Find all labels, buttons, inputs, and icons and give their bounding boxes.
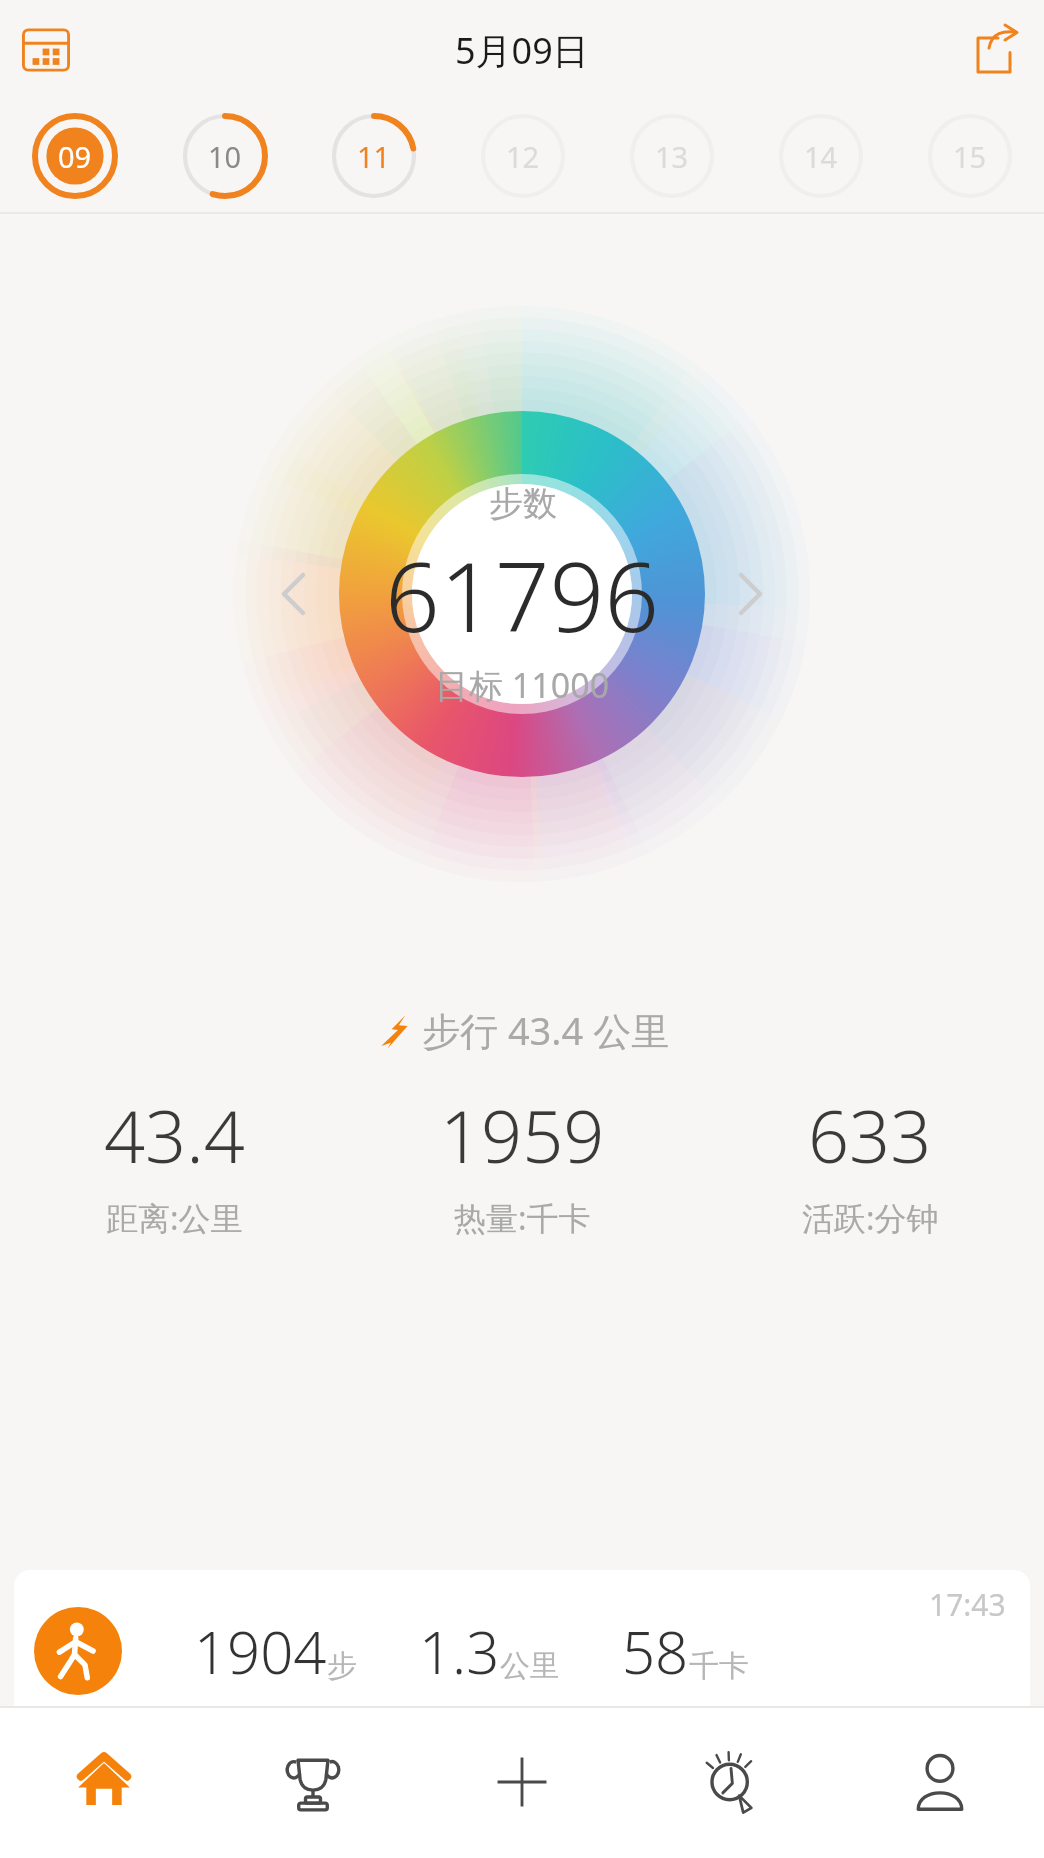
staticText: 距离:公里 — [106, 1196, 243, 1240]
staticText: 61796 — [385, 529, 660, 660]
staticText: 1959 — [440, 1086, 605, 1184]
staticText: 公里 — [500, 1647, 560, 1685]
staticText: 14 — [804, 137, 838, 176]
staticText: 09 — [58, 137, 92, 176]
button[interactable]: Discover — [626, 1706, 835, 1858]
staticText: 千卡 — [689, 1647, 749, 1685]
staticText: 步 — [327, 1647, 357, 1685]
staticText: 1904 — [194, 1612, 327, 1691]
staticText: 17:43 — [929, 1584, 1006, 1625]
button[interactable]: 17:43 — [14, 1570, 1030, 1706]
staticText: 步数 — [489, 482, 557, 525]
button[interactable]: 15 — [895, 100, 1044, 212]
staticText: 11 — [357, 137, 391, 176]
button[interactable]: Profile — [835, 1706, 1044, 1858]
button[interactable]: Home — [0, 1706, 208, 1858]
staticText: 633 — [808, 1086, 932, 1184]
button[interactable]: Share — [958, 14, 1030, 86]
staticText: 10 — [208, 137, 242, 176]
staticText: 1.3 — [419, 1612, 500, 1691]
staticText: 13 — [655, 137, 689, 176]
button[interactable]: Add — [417, 1706, 626, 1858]
button[interactable]: 633 — [696, 1086, 1044, 1240]
button[interactable]: 1959 — [348, 1086, 696, 1240]
button[interactable]: 11 — [299, 100, 448, 212]
staticText: 58 — [622, 1612, 689, 1691]
button[interactable]: Achievements — [208, 1706, 417, 1858]
staticText: 12 — [506, 137, 540, 176]
staticText: 热量:千卡 — [454, 1196, 591, 1240]
button[interactable]: Calendar — [12, 16, 80, 84]
button[interactable]: 10 — [150, 100, 299, 212]
staticText: 目标 11000 — [435, 662, 610, 708]
button[interactable]: 14 — [746, 100, 895, 212]
staticText: 5月09日 — [455, 26, 589, 75]
button[interactable]: 12 — [448, 100, 597, 212]
staticText: 43.4 — [104, 1086, 245, 1184]
staticText: 活跃:分钟 — [802, 1196, 939, 1240]
button[interactable]: 43.4 — [0, 1086, 348, 1240]
staticText: 步行 43.4 公里 — [422, 1004, 670, 1056]
staticText: 15 — [953, 137, 987, 176]
button[interactable]: 09 — [0, 100, 150, 212]
button[interactable]: 13 — [597, 100, 746, 212]
